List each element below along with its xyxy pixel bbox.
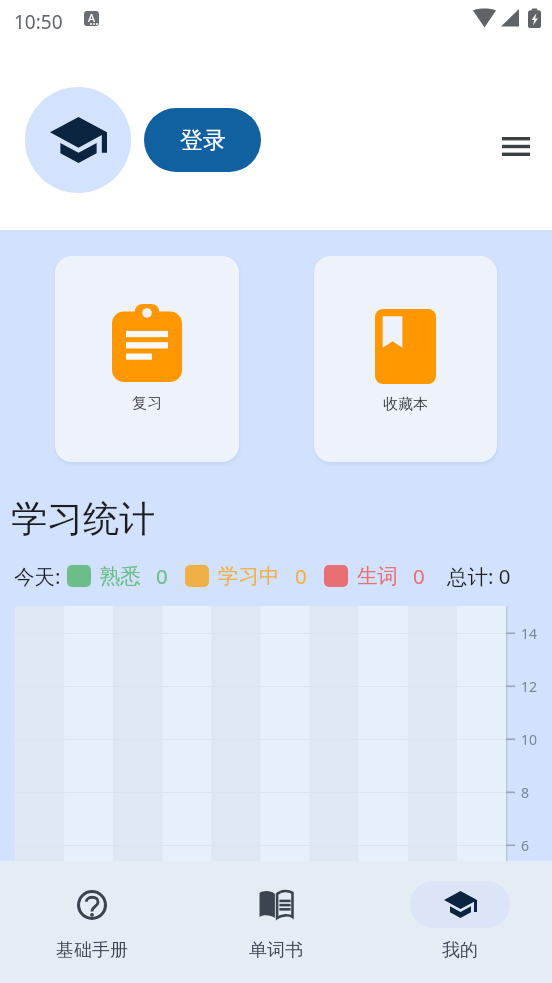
button[interactable]: 收藏本 xyxy=(314,256,497,462)
staticText: 收藏本 xyxy=(383,395,428,414)
staticText: 14 xyxy=(521,624,538,643)
staticText: 学习统计 xyxy=(11,496,155,541)
staticText: 单词书 xyxy=(249,939,303,962)
staticText: 复习 xyxy=(132,394,162,413)
staticText: 熟悉 xyxy=(100,563,141,589)
staticText: A xyxy=(88,11,96,25)
button[interactable]: Menu xyxy=(492,122,540,170)
staticText: 10:50 xyxy=(14,9,63,35)
staticText: 总计: 0 xyxy=(447,562,511,590)
button[interactable]: Profile xyxy=(25,87,131,193)
staticText: 0 xyxy=(156,562,168,590)
button[interactable]: 复习 xyxy=(55,256,239,462)
staticText: 基础手册 xyxy=(56,939,128,962)
staticText: 0 xyxy=(295,562,307,590)
staticText: 我的 xyxy=(442,939,478,962)
staticText: 8 xyxy=(521,783,530,802)
staticText: 登录 xyxy=(180,126,226,155)
button[interactable]: 基础手册 xyxy=(0,861,184,962)
staticText: 今天: xyxy=(14,562,61,590)
staticText: 10 xyxy=(521,730,538,749)
staticText: 生词 xyxy=(357,563,398,589)
staticText: 0 xyxy=(413,562,425,590)
staticText: 12 xyxy=(521,677,538,696)
button[interactable]: 登录 xyxy=(144,108,261,172)
button[interactable]: 单词书 xyxy=(184,861,368,962)
staticText: 6 xyxy=(521,836,530,855)
staticText: 学习中 xyxy=(218,563,280,589)
button[interactable]: 我的 xyxy=(368,861,552,962)
